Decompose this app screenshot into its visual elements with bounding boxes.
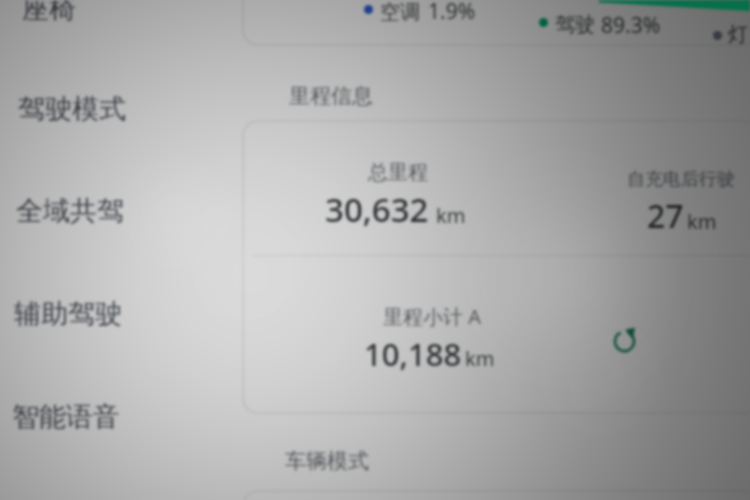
staticText: 总里程 [368, 160, 428, 185]
staticText: 座椅 [22, 0, 76, 26]
button[interactable]: 智能语音 [12, 400, 120, 434]
staticText: 30,632 [325, 187, 429, 232]
staticText: 自充电后行驶 [627, 168, 735, 191]
staticText: 1.9% [428, 0, 476, 26]
button[interactable]: 驾驶模式 [18, 92, 126, 126]
button[interactable]: 辅助驾驶 [14, 297, 122, 331]
staticText: 车辆模式 [285, 448, 369, 474]
staticText: 10,188 [364, 333, 462, 375]
staticText: km [436, 202, 466, 229]
staticText: 驾驶模式 [18, 92, 126, 126]
staticText: km [687, 208, 717, 235]
staticText: 灯 [728, 22, 748, 47]
staticText: 辅助驾驶 [14, 297, 122, 331]
button[interactable]: 全域共驾 [16, 194, 124, 228]
staticText: 驾驶 [555, 12, 595, 37]
button[interactable]: 座椅 [22, 0, 76, 26]
staticText: 89.3% [601, 11, 661, 40]
button[interactable]: Reset trip meter [606, 323, 643, 360]
staticText: 27 [647, 194, 684, 238]
staticText: 智能语音 [12, 400, 120, 434]
staticText: 全域共驾 [16, 194, 124, 228]
staticText: 里程信息 [289, 83, 373, 109]
staticText: 空调 [380, 0, 420, 25]
staticText: km [465, 345, 495, 372]
staticText: 里程小计 A [383, 303, 481, 330]
